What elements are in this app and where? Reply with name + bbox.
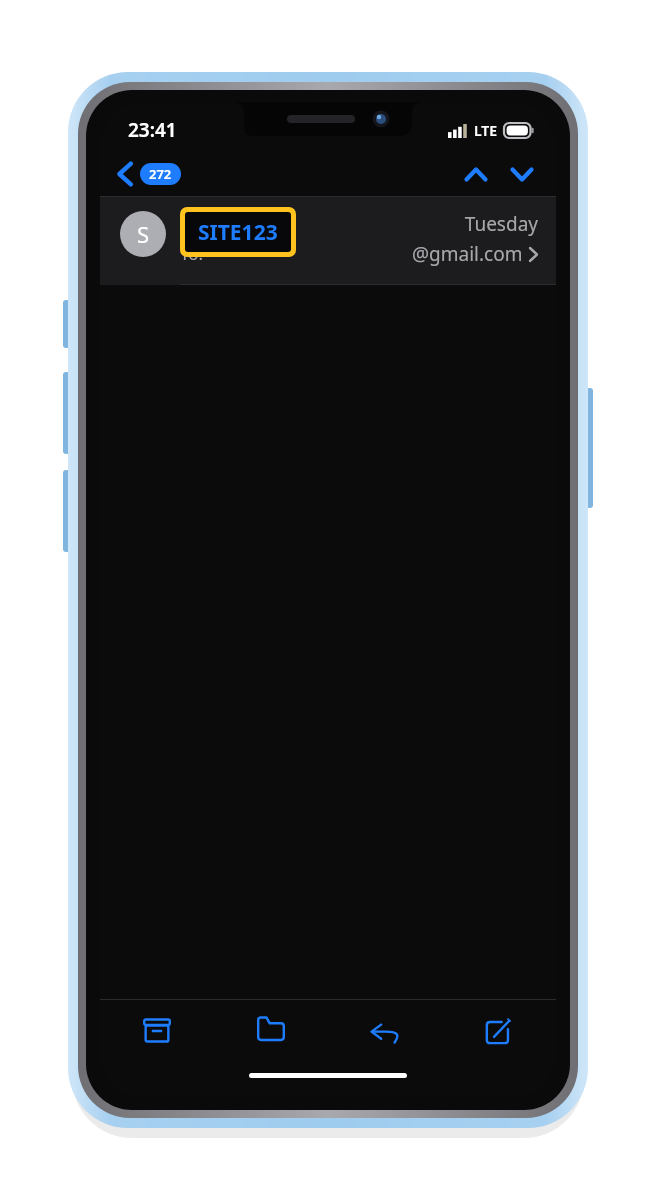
button[interactable]: Archive xyxy=(100,1000,214,1062)
button[interactable]: Previous message xyxy=(456,154,496,194)
staticText: 272 xyxy=(149,165,172,183)
button[interactable]: S xyxy=(100,197,556,285)
button[interactable]: Compose xyxy=(442,1000,556,1062)
staticText: LTE xyxy=(474,121,498,140)
staticText: 23:41 xyxy=(128,117,177,143)
staticText: @gmail.com xyxy=(412,241,523,267)
button[interactable]: Reply xyxy=(328,1000,442,1062)
button[interactable]: Back to inbox, 272 unread xyxy=(112,158,187,190)
button[interactable]: Next message xyxy=(502,154,542,194)
staticText: SITE123 xyxy=(198,218,278,247)
staticText: Tuesday xyxy=(464,211,538,237)
staticText: S xyxy=(137,219,150,249)
staticText: SITE123 xyxy=(180,211,256,238)
staticText: To: xyxy=(180,242,204,265)
button[interactable]: Move to folder xyxy=(214,1000,328,1062)
